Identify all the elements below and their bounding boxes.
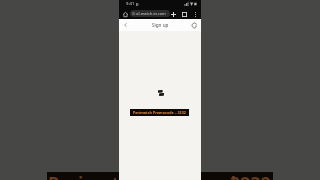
staticText: ul-match-in.com [136,11,166,16]
staticText: Sign up [152,22,169,28]
button[interactable]: Home [121,10,129,18]
button[interactable]: Back [120,20,130,30]
button[interactable]: ul-match-in.com [130,10,170,17]
staticText: – 3232 [216,172,271,180]
button[interactable]: New tab [169,10,177,18]
button[interactable]: More options [191,10,199,18]
staticText: Parimatch Promocode [48,172,247,180]
staticText: 9:41 [126,1,135,7]
button[interactable]: Parimatch Promocode – 3232 [130,109,189,116]
button[interactable]: Refresh [189,20,199,30]
button[interactable]: Parimatch Promocode [47,172,273,180]
button[interactable]: Tabs [180,10,188,18]
staticText: Parimatch Promocode – 3232 [133,110,186,115]
